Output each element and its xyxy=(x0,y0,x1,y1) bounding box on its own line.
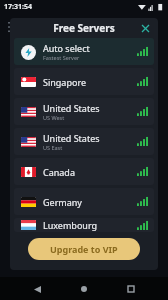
staticText: Free Servers xyxy=(53,21,115,35)
staticText: United States xyxy=(43,132,100,144)
staticText: United States xyxy=(43,102,100,114)
button[interactable]: Auto select xyxy=(14,38,154,65)
staticText: US West xyxy=(43,114,65,121)
staticText: Luxembourg xyxy=(43,219,98,231)
button[interactable]: United States xyxy=(14,98,154,125)
staticText: Canada xyxy=(43,166,75,178)
button[interactable]: Luxembourg xyxy=(14,218,154,232)
button[interactable]: Menu xyxy=(4,18,22,36)
button[interactable]: Close xyxy=(137,20,153,36)
staticText: Auto select xyxy=(43,42,90,54)
button[interactable]: Recents xyxy=(121,279,141,299)
button[interactable]: Germany xyxy=(14,188,154,215)
button[interactable]: Home xyxy=(74,279,94,299)
staticText: US East xyxy=(43,144,63,151)
staticText: Germany xyxy=(43,196,82,208)
staticText: Singapore xyxy=(43,76,87,88)
staticText: Upgrade to VIP xyxy=(50,243,118,255)
button[interactable]: United States xyxy=(14,128,154,155)
button[interactable]: Upgrade to VIP xyxy=(28,238,140,260)
staticText: Fastest Server xyxy=(43,54,80,61)
button[interactable]: Canada xyxy=(14,158,154,185)
button[interactable]: Singapore xyxy=(14,68,154,95)
staticText: 17:31:54 xyxy=(4,2,32,12)
button[interactable]: Back xyxy=(27,279,47,299)
